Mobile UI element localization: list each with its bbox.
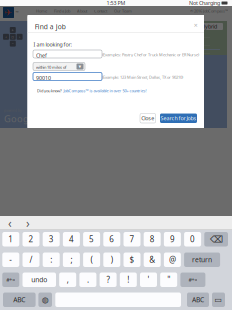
staticText: : bbox=[50, 254, 52, 265]
staticText: 2 bbox=[28, 234, 33, 244]
staticText: ◍ bbox=[42, 295, 49, 304]
button[interactable]: ! bbox=[120, 272, 137, 287]
button[interactable]: ABC bbox=[187, 292, 209, 307]
staticText: ( bbox=[91, 254, 93, 265]
button[interactable]: Next field bbox=[22, 217, 34, 229]
staticText: ABC bbox=[13, 295, 25, 304]
staticText: ; bbox=[70, 254, 72, 265]
staticText: ™ bbox=[15, 10, 18, 15]
staticText: 8 bbox=[150, 234, 155, 244]
staticText: (Example: 123 Main Street, Dallas, TX or… bbox=[102, 74, 183, 80]
button[interactable]: #+= bbox=[2, 272, 19, 287]
staticText: 5 bbox=[89, 234, 94, 244]
staticText: About bbox=[77, 8, 87, 14]
staticText: ⌫ bbox=[210, 234, 223, 245]
staticText: ＋ bbox=[11, 27, 15, 32]
button[interactable]: 5 bbox=[83, 232, 100, 246]
button[interactable]: Dictation bbox=[38, 292, 52, 307]
button[interactable]: Close dialog bbox=[191, 21, 199, 29]
staticText: 90010 bbox=[36, 74, 51, 81]
staticText: . bbox=[87, 274, 89, 285]
button[interactable]: @ bbox=[164, 252, 181, 267]
button[interactable]: ? bbox=[100, 272, 117, 287]
staticText: Our Team bbox=[114, 8, 132, 14]
staticText: Chef bbox=[36, 52, 47, 59]
staticText: 9 bbox=[170, 234, 175, 244]
staticText: / bbox=[29, 254, 32, 265]
staticText: 6 bbox=[109, 234, 114, 244]
button[interactable]: Hide keyboard bbox=[212, 292, 225, 307]
button[interactable]: ( bbox=[83, 252, 100, 267]
staticText: Home bbox=[36, 8, 47, 14]
button[interactable]: 4 bbox=[63, 232, 80, 246]
staticText: ? bbox=[107, 274, 110, 285]
staticText: , bbox=[67, 274, 69, 285]
staticText: ▫ bbox=[11, 34, 14, 39]
staticText: Contact bbox=[94, 8, 107, 14]
button[interactable]: $ bbox=[123, 252, 140, 267]
button[interactable]: 7 bbox=[123, 232, 140, 246]
staticText: › bbox=[26, 215, 30, 231]
staticText: Find a Job bbox=[54, 8, 70, 14]
button[interactable]: Previous field bbox=[4, 217, 16, 229]
button[interactable]: return bbox=[184, 252, 220, 267]
staticText: - bbox=[9, 254, 12, 265]
button[interactable]: 3 bbox=[43, 232, 60, 246]
staticText: JobCompass™ is available in over 50+ cou… bbox=[64, 88, 147, 93]
staticText: 7 bbox=[129, 234, 134, 244]
button[interactable]: Close bbox=[140, 113, 156, 123]
staticText: 1 bbox=[8, 234, 13, 244]
staticText: Did you know? bbox=[37, 88, 62, 93]
staticText: Google bbox=[4, 112, 36, 125]
staticText: ) bbox=[111, 254, 113, 265]
staticText: ABC bbox=[192, 295, 204, 304]
button[interactable]: 6 bbox=[103, 232, 120, 246]
button[interactable]: ABC bbox=[3, 292, 36, 307]
button[interactable]: 1 bbox=[2, 232, 19, 246]
button[interactable]: ) bbox=[103, 252, 120, 267]
staticText: return bbox=[192, 255, 212, 264]
button[interactable]: 9 bbox=[164, 232, 181, 246]
staticText: Hybrid bbox=[201, 23, 217, 30]
staticText: (Examples: Pastry Chef or Truck Mechanic… bbox=[102, 52, 199, 57]
staticText: Not Charging bbox=[189, 0, 220, 7]
staticText: @ bbox=[169, 254, 176, 265]
button[interactable]: 0 bbox=[184, 232, 201, 246]
staticText: ! bbox=[127, 274, 129, 285]
staticText: within 10 miles of bbox=[36, 65, 66, 70]
staticText: － bbox=[11, 41, 15, 46]
staticText: $ bbox=[129, 254, 134, 265]
staticText: undo bbox=[31, 275, 47, 284]
button[interactable]: ; bbox=[63, 252, 80, 267]
staticText: Close bbox=[141, 115, 154, 122]
button[interactable]: & bbox=[144, 252, 161, 267]
button[interactable]: ' bbox=[140, 272, 157, 287]
button[interactable]: undo bbox=[22, 272, 56, 287]
staticText: › bbox=[19, 34, 20, 39]
staticText: © 2016 JobCompass™ bbox=[190, 8, 228, 14]
button[interactable]: . bbox=[79, 272, 96, 287]
button[interactable]: , bbox=[59, 272, 76, 287]
staticText: ▭ bbox=[214, 295, 222, 304]
staticText: & bbox=[149, 254, 155, 265]
button[interactable]: - bbox=[2, 252, 19, 267]
staticText: Find a Job bbox=[35, 22, 66, 31]
button[interactable]: Delete bbox=[204, 232, 228, 246]
button[interactable]: space bbox=[55, 292, 181, 307]
button[interactable]: #+= bbox=[180, 272, 205, 287]
button[interactable]: " bbox=[160, 272, 177, 287]
button[interactable]: Search for Jobs bbox=[160, 113, 197, 123]
button[interactable]: / bbox=[22, 252, 39, 267]
staticText: " bbox=[167, 274, 170, 285]
staticText: 3 bbox=[49, 234, 54, 244]
staticText: ‹ bbox=[8, 215, 12, 231]
button[interactable]: 2 bbox=[22, 232, 39, 246]
button[interactable]: 8 bbox=[144, 232, 161, 246]
staticText: ✈ bbox=[4, 7, 12, 18]
staticText: 1:53 PM bbox=[106, 0, 125, 7]
staticText: 0 bbox=[190, 234, 195, 244]
button[interactable]: : bbox=[43, 252, 60, 267]
staticText: I am looking for: bbox=[33, 41, 71, 48]
